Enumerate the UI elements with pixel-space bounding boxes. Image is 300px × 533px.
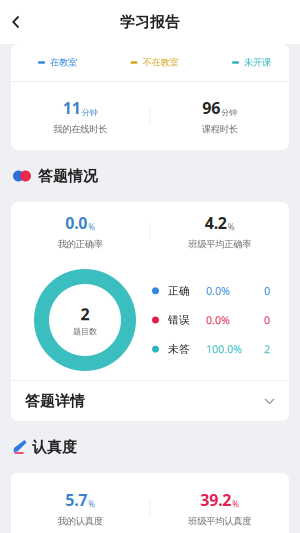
staticText: 11 — [63, 97, 81, 118]
staticText: 班级平均认真度 — [188, 515, 251, 527]
staticText: 答题情况 — [38, 167, 98, 185]
staticText: 我的认真度 — [58, 515, 103, 527]
staticText: 0.0% — [206, 313, 230, 327]
staticText: 错误 — [168, 313, 190, 326]
staticText: % — [232, 499, 239, 509]
staticText: 2 — [264, 342, 270, 356]
staticText: 学习报告 — [120, 13, 180, 31]
staticText: % — [88, 499, 95, 509]
staticText: 5.7 — [65, 489, 87, 510]
staticText: % — [228, 222, 235, 232]
staticText: 2 — [80, 303, 89, 325]
staticText: 0.0 — [65, 212, 87, 233]
button[interactable]: 答题详情 — [11, 381, 289, 421]
staticText: 在教室 — [50, 57, 77, 68]
staticText: 39.2 — [200, 489, 231, 510]
staticText: 分钟 — [82, 108, 98, 117]
staticText: 未答 — [168, 343, 190, 356]
staticText: 0 — [264, 284, 270, 298]
staticText: 0.0% — [206, 284, 230, 298]
staticText: 96 — [202, 97, 220, 118]
staticText: 我的在线时长 — [53, 123, 107, 135]
staticText: 0 — [264, 313, 270, 327]
staticText: 100.0% — [206, 342, 242, 356]
staticText: 认真度 — [32, 438, 77, 456]
staticText: 课程时长 — [202, 123, 238, 135]
staticText: % — [88, 222, 95, 232]
staticText: 班级平均正确率 — [188, 238, 251, 250]
staticText: 分钟 — [221, 108, 237, 117]
staticText: 正确 — [168, 284, 190, 297]
staticText: 我的正确率 — [58, 238, 103, 250]
staticText: 不在教室 — [142, 57, 178, 68]
staticText: 4.2 — [205, 212, 227, 233]
staticText: 答题详情 — [25, 392, 85, 410]
staticText: 题目数 — [73, 327, 97, 336]
staticText: 未开课 — [244, 57, 271, 68]
button[interactable]: 返回 — [0, 6, 32, 37]
